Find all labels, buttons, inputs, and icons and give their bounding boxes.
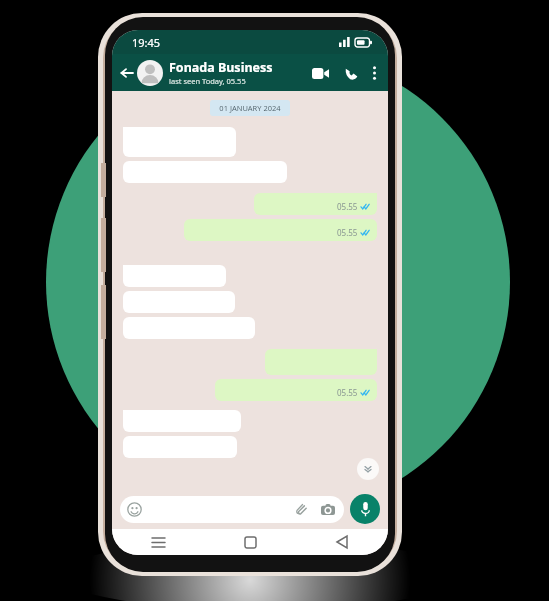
button[interactable]: 05.55 (215, 379, 377, 401)
button[interactable]: Video call (307, 60, 333, 86)
button[interactable] (123, 317, 255, 339)
button[interactable]: Camera (319, 501, 336, 518)
button[interactable]: Contact photo (137, 60, 163, 86)
button[interactable]: Emoji (120, 496, 344, 523)
button[interactable] (123, 436, 237, 458)
staticText: 01 JANUARY 2024 (219, 103, 281, 113)
staticText: 05.55 (337, 387, 358, 398)
button[interactable]: Attach (293, 501, 310, 518)
button[interactable]: Call (339, 61, 363, 85)
staticText: 05.55 (337, 201, 358, 212)
staticText: 19:45 (132, 35, 161, 50)
button[interactable]: 01 JANUARY 2024 (219, 103, 281, 113)
button[interactable]: Scroll to bottom (357, 458, 379, 480)
button[interactable]: Back (117, 63, 137, 83)
button[interactable]: Back (296, 529, 388, 555)
button[interactable] (123, 291, 235, 313)
button[interactable]: 05.55 (254, 193, 377, 215)
button[interactable]: 05.55 (184, 219, 377, 241)
button[interactable]: More options (363, 62, 385, 84)
button[interactable]: Record voice message (350, 494, 380, 524)
button[interactable]: Home (204, 529, 296, 555)
button[interactable] (123, 265, 226, 287)
staticText: 05.55 (337, 227, 358, 238)
staticText: Fonada Business (169, 59, 273, 76)
staticText: last seen Today, 05.55 (169, 76, 246, 86)
button[interactable]: Emoji (127, 502, 142, 517)
button[interactable]: Recent apps (112, 529, 204, 555)
